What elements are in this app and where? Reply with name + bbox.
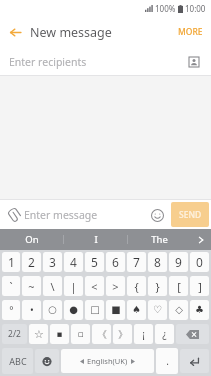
button[interactable]: 3: [43, 252, 62, 272]
staticText: <: [91, 279, 98, 294]
staticText: English(UK): [87, 356, 128, 366]
staticText: ♣: [195, 304, 204, 316]
staticText: >: [112, 279, 119, 294]
staticText: ▫: [77, 329, 84, 339]
button[interactable]: ▪: [50, 324, 69, 344]
button[interactable]: 2/2: [2, 324, 27, 344]
staticText: .: [166, 354, 169, 368]
button[interactable]: Add recipient from contacts: [183, 51, 205, 73]
button[interactable]: 1: [2, 252, 20, 272]
button[interactable]: □: [85, 300, 104, 320]
button[interactable]: 0: [190, 252, 209, 272]
staticText: 7: [133, 254, 140, 270]
button[interactable]: ◇: [169, 300, 188, 320]
staticText: Enter recipients: [9, 55, 87, 69]
staticText: ♠: [132, 304, 141, 316]
button[interactable]: ■: [106, 300, 125, 320]
staticText: ▪: [56, 329, 63, 339]
staticText: The: [151, 233, 168, 246]
button[interactable]: [: [169, 276, 188, 296]
staticText: New message: [30, 24, 112, 41]
staticText: 6: [112, 254, 119, 270]
button[interactable]: Back: [0, 17, 30, 47]
staticText: 5: [91, 254, 98, 270]
staticText: 2: [28, 254, 35, 270]
button[interactable]: \: [43, 276, 62, 296]
staticText: On: [25, 233, 39, 246]
button[interactable]: |: [64, 276, 83, 296]
button[interactable]: MORE: [170, 16, 211, 48]
button[interactable]: 》: [113, 324, 132, 344]
staticText: ♡: [153, 304, 162, 316]
button[interactable]: <: [85, 276, 104, 296]
button[interactable]: {: [127, 276, 146, 296]
button[interactable]: I: [64, 229, 127, 250]
button[interactable]: ¡: [134, 324, 153, 344]
staticText: ~: [28, 279, 35, 294]
staticText: }: [155, 279, 160, 294]
button[interactable]: Attach: [0, 203, 24, 227]
button[interactable]: 7: [127, 252, 146, 272]
button[interactable]: ○: [43, 300, 62, 320]
button[interactable]: Enter recipients: [0, 48, 211, 75]
button[interactable]: 4: [64, 252, 83, 272]
button[interactable]: ♠: [127, 300, 146, 320]
button[interactable]: ●: [64, 300, 83, 320]
button[interactable]: 《: [92, 324, 111, 344]
staticText: `: [9, 279, 13, 294]
button[interactable]: 9: [169, 252, 188, 272]
button[interactable]: ABC: [2, 348, 33, 374]
staticText: ●: [69, 304, 78, 316]
staticText: \: [50, 279, 55, 294]
button[interactable]: >: [106, 276, 125, 296]
button[interactable]: Emoji: [145, 203, 169, 227]
staticText: ¿: [162, 327, 167, 341]
button[interactable]: More suggestions: [191, 229, 211, 250]
staticText: {: [134, 279, 139, 294]
button[interactable]: 6: [106, 252, 125, 272]
staticText: 8: [154, 254, 161, 270]
staticText: [: [177, 279, 181, 294]
staticText: 10:00: [185, 3, 206, 14]
staticText: 100%: [155, 3, 176, 14]
button[interactable]: On: [0, 229, 63, 250]
staticText: ABC: [9, 355, 27, 367]
staticText: 9: [175, 254, 182, 270]
staticText: °: [9, 303, 14, 317]
button[interactable]: .: [156, 348, 178, 374]
button[interactable]: ]: [190, 276, 209, 296]
button[interactable]: `: [2, 276, 20, 296]
button[interactable]: Backspace: [176, 324, 209, 344]
staticText: ○: [48, 304, 57, 316]
staticText: 1: [8, 254, 15, 270]
button[interactable]: ♣: [190, 300, 209, 320]
button[interactable]: ▫: [71, 324, 90, 344]
button[interactable]: Emoji keyboard: [35, 349, 59, 373]
staticText: SEND: [179, 209, 202, 221]
staticText: 2/2: [8, 328, 21, 340]
button[interactable]: 5: [85, 252, 104, 272]
button[interactable]: }: [148, 276, 167, 296]
button[interactable]: •: [22, 300, 41, 320]
button[interactable]: °: [2, 300, 20, 320]
button[interactable]: ~: [22, 276, 41, 296]
staticText: Enter message: [24, 208, 98, 222]
button[interactable]: ☆: [29, 324, 48, 344]
button[interactable]: ¿: [155, 324, 174, 344]
staticText: ☆: [34, 328, 44, 341]
button[interactable]: ♡: [148, 300, 167, 320]
staticText: □: [90, 304, 100, 316]
staticText: 4: [70, 254, 77, 270]
button[interactable]: The: [128, 229, 191, 250]
button[interactable]: Enter: [180, 349, 209, 373]
button[interactable]: 2: [22, 252, 41, 272]
staticText: ■: [111, 304, 121, 316]
staticText: 《: [97, 328, 107, 341]
button[interactable]: 8: [148, 252, 167, 272]
staticText: I: [94, 233, 98, 246]
staticText: ]: [198, 279, 202, 294]
staticText: MORE: [178, 26, 203, 38]
staticText: 0: [196, 254, 203, 270]
button[interactable]: English(UK): [61, 349, 154, 373]
button[interactable]: SEND: [171, 202, 209, 227]
